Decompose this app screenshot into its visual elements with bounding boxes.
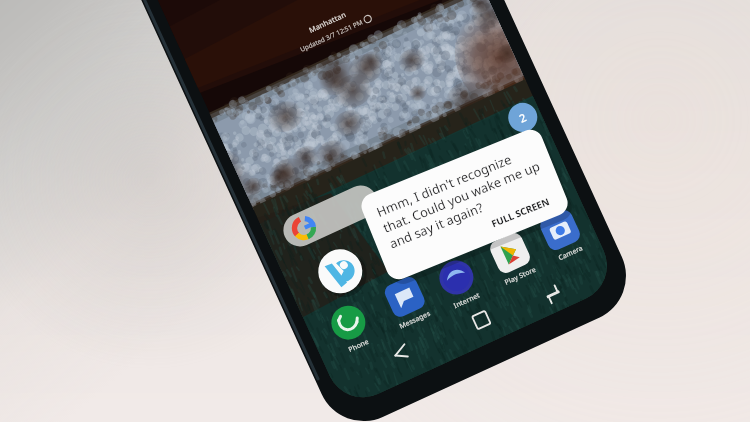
button[interactable]: Bixby assistant response on a Galaxy pho… xyxy=(0,0,750,422)
